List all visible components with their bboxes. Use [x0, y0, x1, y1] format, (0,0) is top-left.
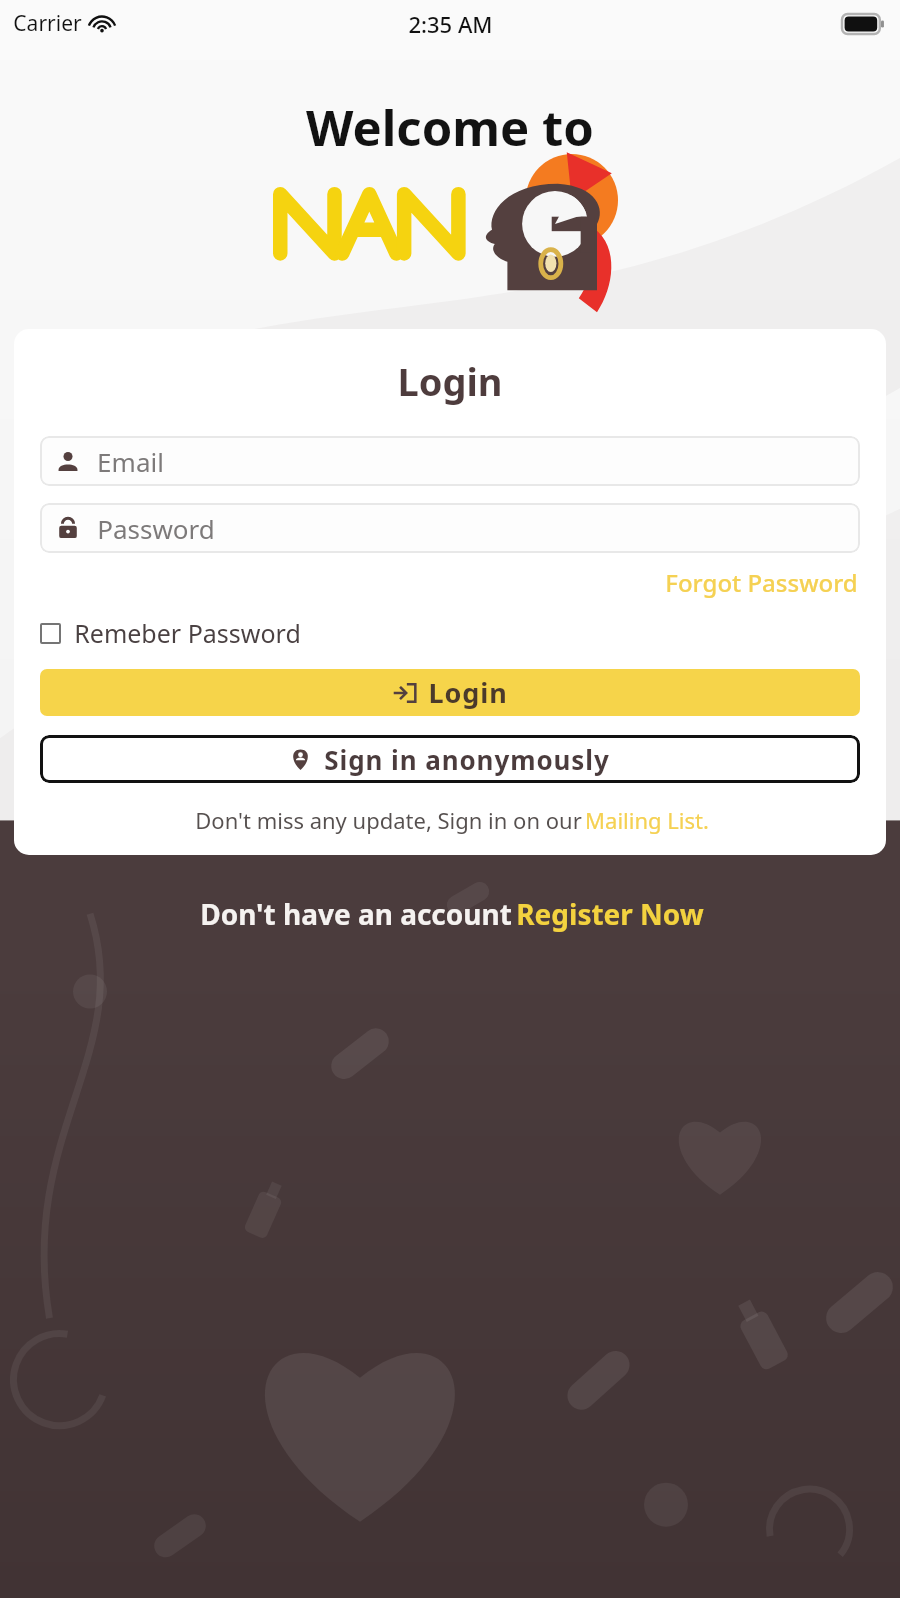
button[interactable]: Sign in anonymously — [40, 735, 860, 783]
button[interactable]: Don't have an account — [190, 891, 710, 937]
staticText: Remeber Password — [74, 616, 301, 650]
button[interactable]: Remeber Password — [40, 614, 307, 652]
staticText: Register Now — [516, 895, 704, 933]
staticText: Don't have an account — [196, 895, 516, 933]
staticText: Carrier — [13, 9, 82, 38]
staticText: Login — [428, 674, 508, 711]
staticText: Email — [97, 444, 164, 479]
staticText: Password — [97, 511, 215, 546]
button[interactable]: Login — [40, 669, 860, 716]
staticText: Welcome to — [306, 94, 594, 161]
staticText: Mailing List. — [585, 805, 709, 835]
staticText: 2:35 AM — [408, 9, 493, 39]
button[interactable]: Email — [40, 436, 860, 486]
button[interactable]: Forgot Password — [663, 564, 860, 601]
button[interactable]: Don't miss any update, Sign in on our — [40, 805, 860, 835]
staticText: Don't miss any update, Sign in on our — [192, 805, 585, 835]
button[interactable]: Password — [40, 503, 860, 553]
staticText: Login — [397, 355, 503, 407]
staticText: Forgot Password — [665, 566, 858, 599]
staticText: Sign in anonymously — [324, 742, 610, 777]
